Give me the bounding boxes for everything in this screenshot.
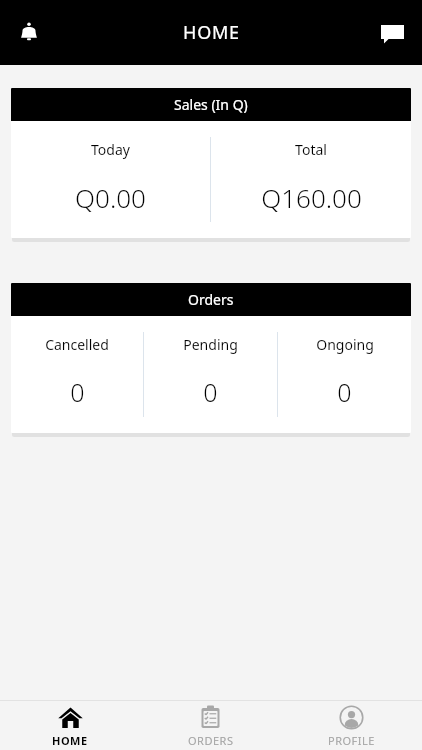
staticText: Today [91, 140, 130, 159]
staticText: PROFILE [328, 733, 375, 748]
button[interactable]: Notifications [8, 12, 50, 54]
staticText: Total [295, 140, 327, 159]
button[interactable]: Messages [371, 12, 413, 54]
staticText: Ongoing [316, 335, 374, 354]
staticText: 0 [70, 375, 85, 409]
staticText: 0 [203, 375, 218, 409]
staticText: 0 [337, 375, 352, 409]
button[interactable]: PROFILE [281, 701, 422, 750]
staticText: Q0.00 [75, 180, 146, 215]
staticText: HOME [183, 20, 240, 45]
staticText: Sales (In Q) [174, 95, 248, 114]
staticText: Q160.00 [261, 180, 362, 215]
staticText: Orders [188, 290, 234, 309]
staticText: HOME [52, 733, 88, 748]
button[interactable]: HOME [0, 701, 140, 750]
button[interactable]: ORDERS [140, 701, 281, 750]
staticText: ORDERS [188, 733, 234, 748]
staticText: Pending [183, 335, 238, 354]
button[interactable]: Orders [11, 283, 411, 433]
button[interactable]: Sales (In Q) [11, 88, 411, 238]
staticText: Cancelled [45, 335, 109, 354]
